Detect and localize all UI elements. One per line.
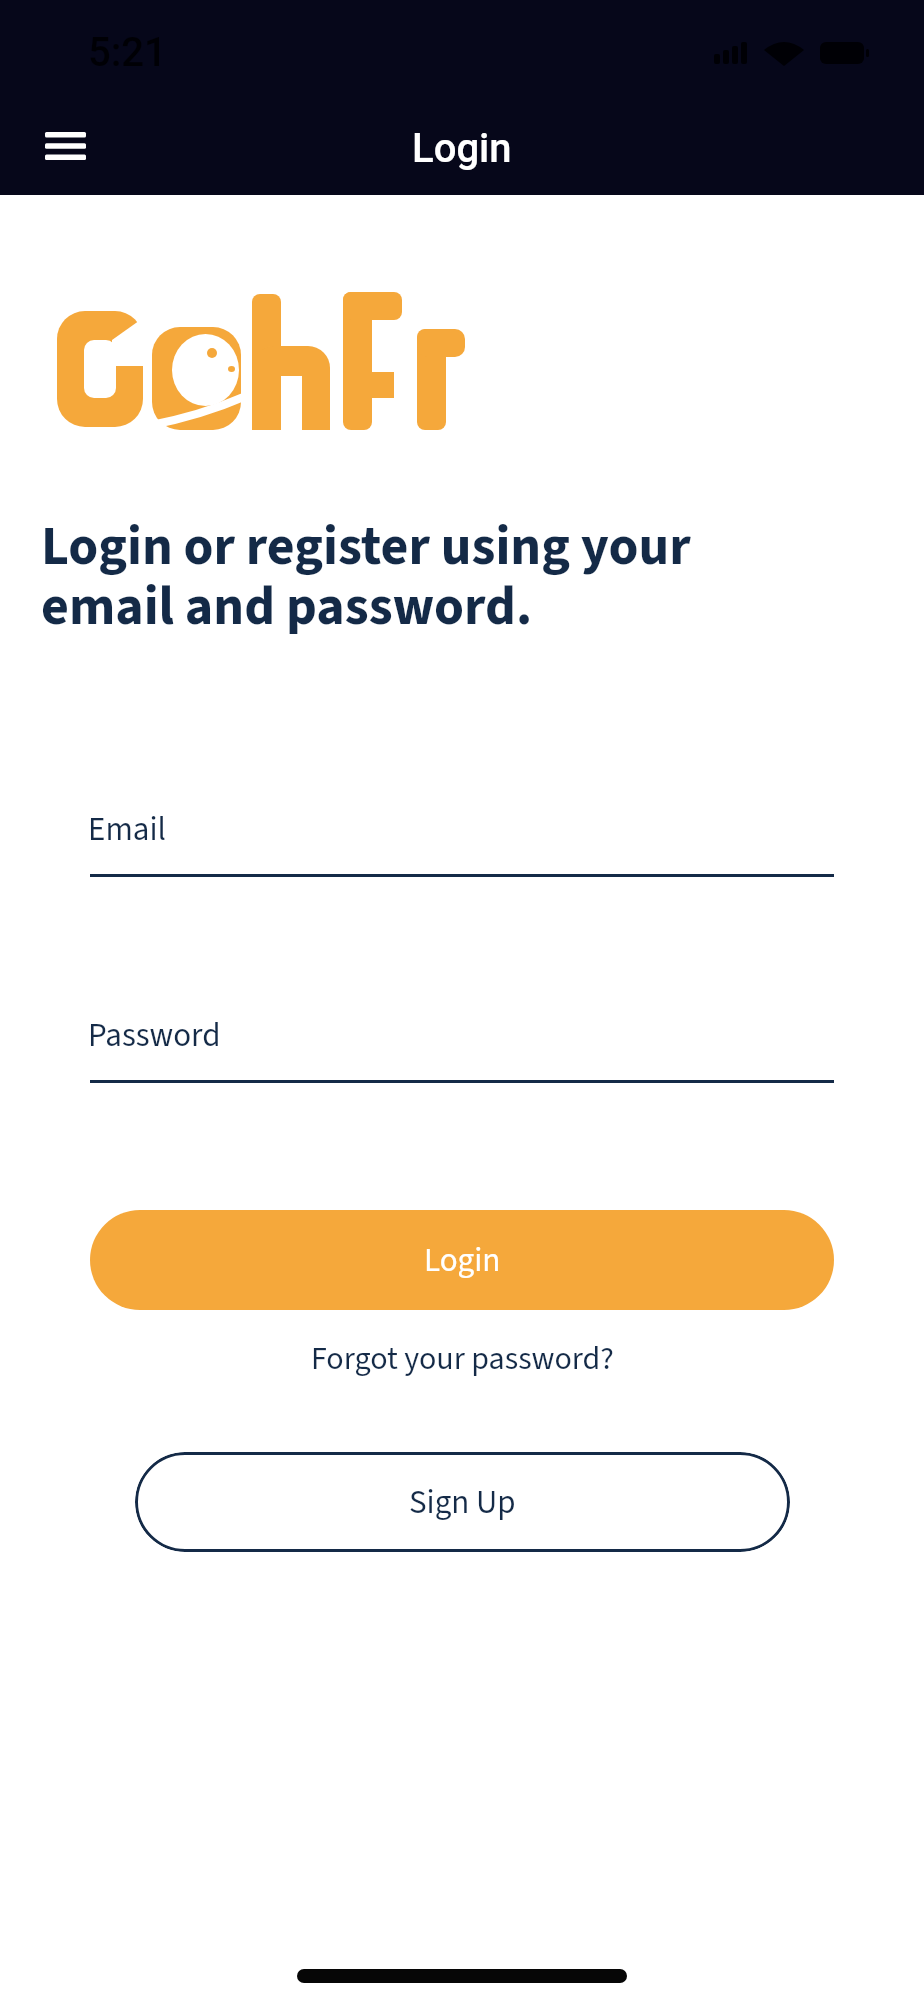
staticText: Password [88, 1012, 221, 1059]
staticText: Sign Up [409, 1479, 516, 1526]
staticText: Login [412, 125, 512, 172]
button[interactable] [30, 118, 100, 174]
button[interactable]: Forgot your password? [311, 1336, 614, 1382]
staticText: 5:21 [88, 29, 167, 76]
button[interactable]: Sign Up [135, 1452, 790, 1552]
staticText: Login or register using your email and p… [41, 509, 691, 646]
button[interactable]: Login [90, 1210, 834, 1310]
staticText: Email [88, 806, 166, 853]
staticText: Login [424, 1237, 501, 1284]
